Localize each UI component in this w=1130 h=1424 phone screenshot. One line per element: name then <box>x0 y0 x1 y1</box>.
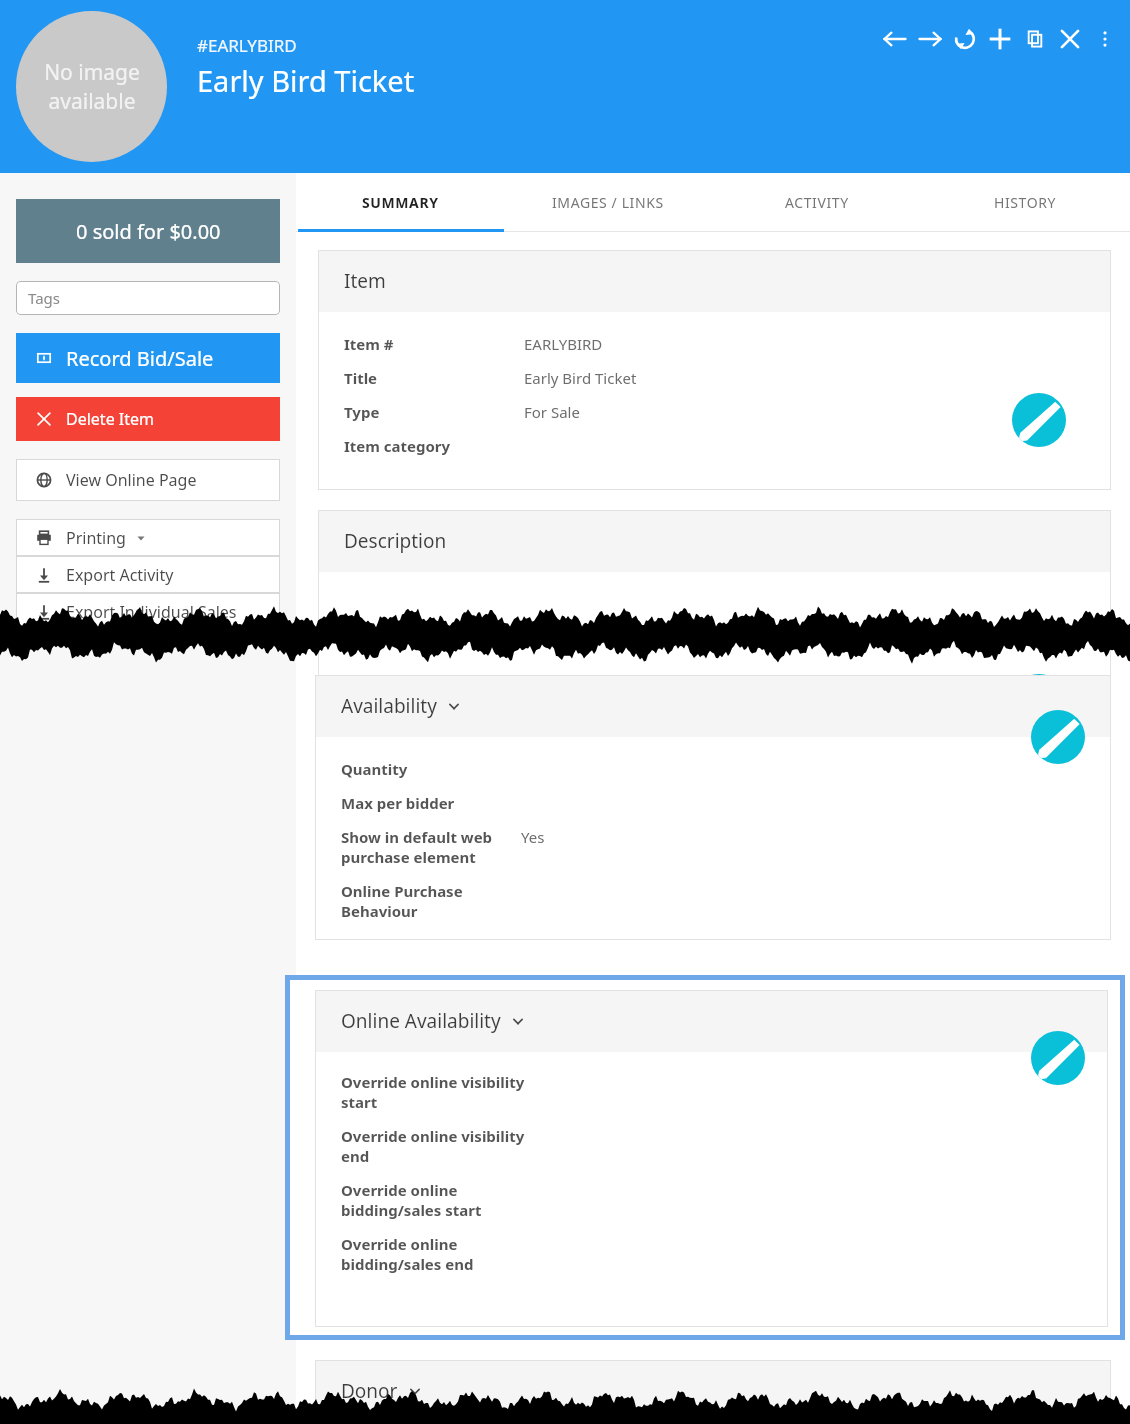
button[interactable]: View Online Page <box>16 459 280 501</box>
staticText: ACTIVITY <box>785 193 849 212</box>
staticText: For Sale <box>524 402 580 422</box>
staticText: Online Purchase Behaviour <box>341 881 463 921</box>
staticText: Show in default web purchase element <box>341 827 521 867</box>
staticText: Record Bid/Sale <box>66 345 214 372</box>
staticText: 0 sold for $0.00 <box>76 218 221 245</box>
button[interactable]: Edit <box>1031 710 1085 764</box>
button[interactable]: Forward <box>913 22 947 56</box>
button[interactable]: SUMMARY <box>296 173 504 232</box>
staticText: Printing <box>66 527 126 549</box>
button[interactable]: Duplicate <box>1018 22 1052 56</box>
staticText: Max per bidder <box>341 793 521 813</box>
button[interactable]: Close <box>1053 22 1087 56</box>
button[interactable]: Edit <box>1012 674 1066 728</box>
staticText: Online Availability <box>341 1008 501 1034</box>
staticText: Tags <box>28 288 60 308</box>
staticText: Donor <box>341 1378 398 1404</box>
button[interactable]: ACTIVITY <box>712 173 921 232</box>
staticText: View Online Page <box>66 469 197 491</box>
staticText: #EARLYBIRD <box>197 34 297 57</box>
staticText: Override online bidding/sales start <box>341 1180 482 1220</box>
staticText: Item <box>344 268 386 294</box>
button[interactable]: Export Activity <box>16 556 280 593</box>
staticText: Description <box>344 528 447 554</box>
staticText: Early Bird Ticket <box>197 61 415 100</box>
staticText: Type <box>344 402 524 422</box>
button[interactable]: Delete Item <box>16 397 280 441</box>
button[interactable]: HISTORY <box>921 173 1130 232</box>
staticText: Export Activity <box>66 564 174 586</box>
staticText: Quantity <box>341 759 521 779</box>
button[interactable]: Add <box>983 22 1017 56</box>
button[interactable]: Export Individual Sales <box>16 593 280 630</box>
staticText: Early Bird Ticket <box>524 368 637 388</box>
staticText: Item # <box>344 334 524 354</box>
staticText: Override online bidding/sales end <box>341 1234 474 1274</box>
staticText: Availability <box>341 693 437 719</box>
staticText: IMAGES / LINKS <box>552 193 664 212</box>
staticText: HISTORY <box>994 193 1057 212</box>
staticText: Override online visibility end <box>341 1126 525 1166</box>
button[interactable]: Tags <box>16 281 280 315</box>
button[interactable]: Printing <box>16 519 280 556</box>
button[interactable]: Back <box>878 22 912 56</box>
button[interactable]: Edit <box>1031 1031 1085 1085</box>
button[interactable]: More options <box>1088 22 1122 56</box>
button[interactable]: IMAGES / LINKS <box>504 173 712 232</box>
staticText: Override online visibility start <box>341 1072 525 1112</box>
button[interactable]: Record Bid/Sale <box>16 333 280 383</box>
staticText: Yes <box>521 827 545 847</box>
button[interactable]: Refresh <box>948 22 982 56</box>
staticText: Item category <box>344 436 524 456</box>
staticText: EARLYBIRD <box>524 334 603 354</box>
staticText: Title <box>344 368 524 388</box>
staticText: Export Individual Sales <box>66 601 237 623</box>
staticText: No image available <box>44 58 140 115</box>
button[interactable]: 0 sold for $0.00 <box>16 199 280 263</box>
button[interactable]: Edit <box>1012 393 1066 447</box>
staticText: Delete Item <box>66 408 155 430</box>
staticText: SUMMARY <box>362 193 439 212</box>
